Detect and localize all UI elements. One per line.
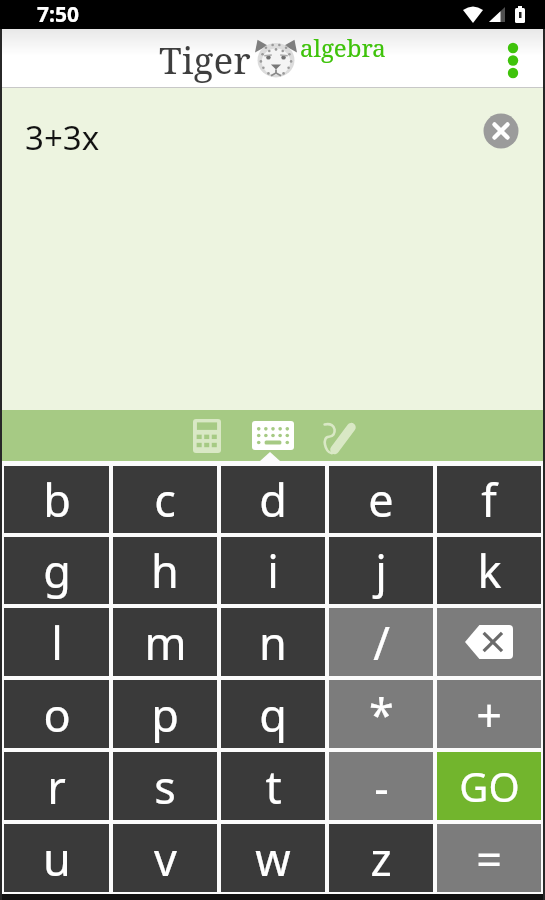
button[interactable] <box>247 410 299 461</box>
staticText: / <box>373 612 390 673</box>
staticText: m <box>144 612 187 673</box>
button[interactable]: i <box>221 537 325 604</box>
button[interactable]: n <box>221 608 325 676</box>
button[interactable]: e <box>329 466 433 533</box>
button[interactable]: = <box>437 824 541 892</box>
button[interactable]: u <box>4 824 109 892</box>
staticText: * <box>369 684 394 745</box>
button[interactable]: r <box>4 752 109 820</box>
staticText: Tiger <box>159 34 251 84</box>
button[interactable] <box>483 113 519 149</box>
button[interactable]: d <box>221 466 325 533</box>
button[interactable]: * <box>329 680 433 748</box>
staticText: - <box>374 756 389 817</box>
button[interactable]: w <box>221 824 325 892</box>
button[interactable] <box>187 410 227 461</box>
button[interactable]: j <box>329 537 433 604</box>
button[interactable]: h <box>113 537 217 604</box>
button[interactable]: c <box>113 466 217 533</box>
staticText: j <box>375 540 387 601</box>
button[interactable]: f <box>437 466 541 533</box>
button[interactable]: g <box>4 537 109 604</box>
staticText: b <box>43 469 71 530</box>
staticText: i <box>267 540 279 601</box>
staticText: s <box>154 756 176 817</box>
staticText: d <box>259 469 287 530</box>
staticText: algebra <box>300 31 386 64</box>
staticText: f <box>481 469 497 530</box>
staticText: e <box>368 469 394 530</box>
button[interactable]: m <box>113 608 217 676</box>
button[interactable]: l <box>4 608 109 676</box>
button[interactable]: z <box>329 824 433 892</box>
staticText: z <box>370 828 392 889</box>
staticText: 7:50 <box>37 0 79 29</box>
button[interactable]: + <box>437 680 541 748</box>
button[interactable]: b <box>4 466 109 533</box>
button[interactable]: GO <box>437 752 541 820</box>
button[interactable]: / <box>329 608 433 676</box>
staticText: k <box>477 540 502 601</box>
staticText: GO <box>459 759 520 813</box>
staticText: l <box>51 612 63 673</box>
staticText: o <box>43 684 71 745</box>
button[interactable]: p <box>113 680 217 748</box>
staticText: r <box>47 756 66 817</box>
button[interactable]: k <box>437 537 541 604</box>
staticText: h <box>151 540 179 601</box>
staticText: t <box>265 756 282 817</box>
button[interactable]: s <box>113 752 217 820</box>
staticText: u <box>43 828 71 889</box>
staticText: + <box>476 684 502 745</box>
staticText: v <box>154 828 177 889</box>
button[interactable]: o <box>4 680 109 748</box>
staticText: = <box>476 828 502 889</box>
button[interactable]: - <box>329 752 433 820</box>
staticText: q <box>259 684 287 745</box>
staticText: n <box>259 612 287 673</box>
button[interactable] <box>319 410 359 461</box>
button[interactable]: v <box>113 824 217 892</box>
staticText: 3+3x <box>25 115 100 160</box>
button[interactable]: q <box>221 680 325 748</box>
button[interactable]: t <box>221 752 325 820</box>
staticText: g <box>43 540 71 601</box>
button[interactable] <box>437 608 541 676</box>
staticText: p <box>151 684 179 745</box>
button[interactable] <box>497 35 529 83</box>
staticText: c <box>154 469 176 530</box>
staticText: w <box>255 828 291 889</box>
